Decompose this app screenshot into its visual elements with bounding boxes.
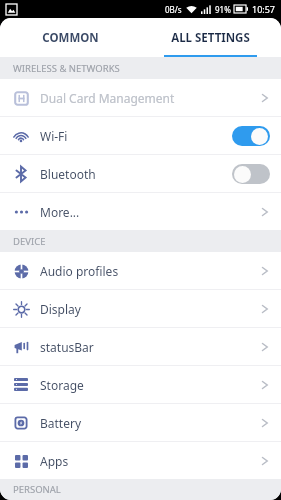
staticText: COMMON (42, 30, 99, 46)
button[interactable]: Bluetooth (0, 155, 281, 192)
button[interactable]: Audio profiles (0, 252, 281, 289)
button[interactable]: More... (0, 193, 281, 230)
button[interactable]: Display (0, 290, 281, 327)
button[interactable]: Wi-Fi (0, 117, 281, 154)
staticText: Storage (40, 377, 260, 393)
staticText: ALL SETTINGS (171, 30, 250, 46)
button[interactable]: Storage (0, 366, 281, 403)
button[interactable]: ALL SETTINGS (140, 18, 281, 57)
staticText: WIRELESS & NETWORKS (13, 62, 120, 75)
staticText: PERSONAL (13, 483, 61, 496)
staticText: More... (40, 204, 260, 220)
button[interactable]: statusBar (0, 328, 281, 365)
staticText: statusBar (40, 339, 260, 355)
button[interactable]: Toggle on (232, 126, 270, 146)
staticText: Apps (40, 453, 260, 469)
staticText: 0B/s (165, 4, 182, 15)
staticText: Dual Card Management (40, 90, 260, 106)
staticText: 10:57 (252, 3, 276, 15)
staticText: DEVICE (13, 235, 46, 248)
button[interactable]: Battery (0, 404, 281, 441)
staticText: Audio profiles (40, 263, 260, 279)
button[interactable]: Dual Card Management (0, 79, 281, 116)
button[interactable]: Toggle off (232, 164, 270, 184)
button[interactable]: COMMON (0, 18, 140, 57)
button[interactable]: Apps (0, 442, 281, 479)
staticText: Display (40, 301, 260, 317)
staticText: 91% (215, 4, 231, 15)
staticText: Battery (40, 415, 260, 431)
staticText: Wi-Fi (40, 128, 232, 144)
staticText: Bluetooth (40, 166, 232, 182)
